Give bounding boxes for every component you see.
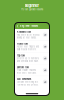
staticText: Anchor your fingers and — [17, 46, 39, 48]
button[interactable]: Full sentences — [15, 76, 49, 88]
staticText: Bottom row — [17, 66, 29, 69]
button[interactable]: Back — [16, 24, 19, 28]
button[interactable]: Top row — [15, 53, 49, 64]
staticText: Beginner lessons — [20, 24, 38, 27]
staticText: Find every letter without — [17, 34, 40, 36]
staticText: Beginner — [24, 3, 39, 8]
staticText: Stretch up to numbers — [17, 57, 39, 60]
staticText: Top row — [17, 54, 25, 57]
staticText: Keyboard tour — [17, 31, 31, 33]
staticText: Home row — [17, 42, 28, 45]
staticText: Train trickier reaches — [17, 69, 36, 72]
staticText: Combine everything into — [17, 81, 38, 83]
button[interactable]: Bottom row — [15, 64, 49, 76]
staticText: looking at your hands. — [17, 37, 37, 39]
staticText: Try our guided lessons — [21, 8, 43, 11]
button[interactable]: Keyboard tour — [15, 29, 49, 40]
staticText: build muscle memory. — [17, 48, 37, 51]
staticText: real words and phrases. — [17, 84, 39, 86]
button[interactable]: Home row — [15, 41, 49, 52]
staticText: and symbols with ease. — [17, 60, 39, 62]
staticText: with short exercises. — [17, 72, 37, 74]
staticText: Full sentences — [17, 78, 31, 81]
